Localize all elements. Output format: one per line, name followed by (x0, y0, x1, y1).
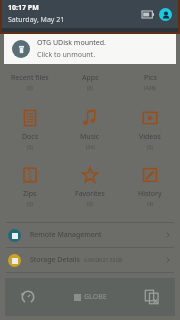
button[interactable]: Back (15, 284, 41, 310)
staticText: Apps (82, 73, 99, 83)
staticText: (04) (86, 144, 95, 151)
button[interactable]: Recent files (0, 68, 60, 94)
staticText: Music (80, 132, 100, 142)
staticText: Favorites (75, 189, 105, 199)
button[interactable]: Remote Management (0, 223, 180, 247)
button[interactable]: Docs (0, 106, 60, 153)
staticText: (0) (147, 144, 153, 151)
staticText: Pics (144, 73, 157, 83)
staticText: (0) (27, 201, 33, 208)
button[interactable]: History (120, 163, 180, 210)
staticText: 6.66GB/21.53GB (84, 257, 123, 264)
staticText: History (138, 189, 162, 199)
staticText: Recent files (11, 73, 49, 83)
staticText: GLOBE (84, 292, 107, 302)
button[interactable]: Videos (120, 106, 180, 153)
staticText: Docs (22, 132, 39, 142)
button[interactable]: Close copies (139, 284, 165, 310)
staticText: 10:17 PM (8, 3, 39, 13)
staticText: (428) (144, 85, 156, 92)
button[interactable]: Apps (60, 68, 120, 94)
button[interactable]: Music (60, 106, 120, 153)
staticText: (0) (87, 201, 93, 208)
button[interactable]: Zips (0, 163, 60, 210)
staticText: Storage Details (30, 255, 80, 265)
button[interactable]: OTG UDisk mounted. (4, 34, 176, 64)
staticText: OTG UDisk mounted. (37, 38, 106, 48)
staticText: (0) (87, 85, 93, 92)
button[interactable]: Account (159, 8, 172, 21)
staticText: (0) (27, 85, 33, 92)
button[interactable]: GLOBE (41, 278, 139, 316)
staticText: (0) (27, 144, 33, 151)
button[interactable]: Pics (120, 68, 180, 94)
staticText: Click to unmount. (37, 50, 96, 60)
staticText: Saturday, May 21 (8, 15, 65, 25)
staticText: Remote Management (30, 230, 102, 240)
staticText: (4) (147, 201, 153, 208)
button[interactable]: Storage Details (0, 248, 180, 272)
staticText: Zips (23, 189, 37, 199)
staticText: Videos (139, 132, 161, 142)
button[interactable]: Favorites (60, 163, 120, 210)
